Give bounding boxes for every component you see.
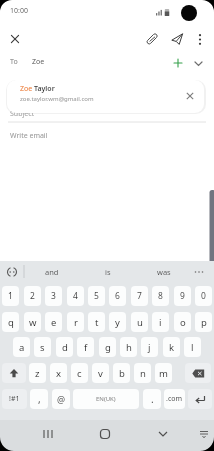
staticText: and bbox=[45, 267, 59, 277]
staticText: c bbox=[77, 367, 82, 380]
button[interactable]: .com bbox=[164, 389, 185, 409]
button[interactable]: b bbox=[113, 363, 130, 383]
button[interactable]: y bbox=[109, 312, 126, 332]
button[interactable]: 8 bbox=[152, 286, 169, 306]
staticText: .com bbox=[166, 394, 183, 404]
button[interactable]: was bbox=[140, 261, 188, 282]
staticText: p bbox=[201, 316, 207, 329]
button[interactable]: 5 bbox=[88, 286, 105, 306]
button[interactable]: 1 bbox=[2, 286, 19, 306]
button[interactable] bbox=[171, 56, 185, 70]
button[interactable]: i bbox=[152, 312, 169, 332]
staticText: zoe.taylor.wm@gmail.com bbox=[20, 95, 94, 103]
staticText: Write email bbox=[10, 131, 48, 141]
staticText: z bbox=[35, 367, 40, 380]
button[interactable]: , bbox=[30, 389, 48, 409]
button[interactable]: x bbox=[50, 363, 67, 383]
staticText: s bbox=[40, 341, 45, 354]
staticText: o bbox=[180, 316, 186, 329]
button[interactable] bbox=[4, 264, 20, 280]
staticText: EN(UK) bbox=[96, 395, 116, 403]
button[interactable]: a bbox=[13, 337, 30, 357]
button[interactable]: e bbox=[45, 312, 62, 332]
staticText: d bbox=[62, 341, 68, 354]
button[interactable]: u bbox=[131, 312, 148, 332]
staticText: 6 bbox=[115, 290, 120, 302]
button[interactable] bbox=[2, 363, 26, 383]
staticText: w bbox=[29, 316, 37, 329]
staticText: y bbox=[115, 316, 120, 329]
staticText: 2 bbox=[30, 290, 35, 302]
button[interactable]: o bbox=[174, 312, 191, 332]
button[interactable] bbox=[8, 32, 22, 46]
staticText: 10:00 bbox=[10, 6, 28, 16]
staticText: m bbox=[159, 367, 168, 380]
staticText: is bbox=[105, 267, 111, 277]
button[interactable] bbox=[183, 89, 197, 103]
button[interactable]: w bbox=[24, 312, 41, 332]
button[interactable] bbox=[194, 32, 206, 47]
button[interactable]: p bbox=[195, 312, 212, 332]
button[interactable]: 3 bbox=[45, 286, 62, 306]
button[interactable]: . bbox=[143, 389, 161, 409]
button[interactable] bbox=[185, 363, 211, 383]
staticText: h bbox=[126, 341, 132, 354]
button[interactable]: r bbox=[67, 312, 84, 332]
staticText: 4 bbox=[73, 290, 78, 302]
button[interactable]: 9 bbox=[174, 286, 191, 306]
button[interactable]: 0 bbox=[195, 286, 212, 306]
button[interactable]: s bbox=[34, 337, 51, 357]
staticText: k bbox=[169, 341, 175, 354]
button[interactable]: h bbox=[120, 337, 137, 357]
button[interactable]: q bbox=[2, 312, 19, 332]
button[interactable] bbox=[192, 57, 205, 70]
button[interactable] bbox=[98, 428, 112, 440]
staticText: t bbox=[95, 316, 99, 329]
button[interactable] bbox=[146, 33, 159, 46]
button[interactable]: n bbox=[134, 363, 151, 383]
button[interactable]: Zoe Taylor bbox=[7, 80, 204, 113]
button[interactable] bbox=[170, 32, 184, 46]
staticText: 7 bbox=[137, 290, 142, 302]
button[interactable]: EN(UK) bbox=[73, 389, 139, 409]
staticText: e bbox=[51, 316, 57, 329]
staticText: 1 bbox=[8, 290, 13, 302]
button[interactable]: 4 bbox=[67, 286, 84, 306]
staticText: . bbox=[151, 392, 154, 406]
button[interactable]: l bbox=[184, 337, 201, 357]
button[interactable] bbox=[40, 428, 56, 440]
staticText: 3 bbox=[51, 290, 56, 302]
button[interactable] bbox=[188, 389, 212, 409]
button[interactable] bbox=[190, 261, 208, 282]
button[interactable]: and bbox=[28, 261, 76, 282]
staticText: g bbox=[105, 341, 111, 354]
button[interactable]: 6 bbox=[109, 286, 126, 306]
button[interactable]: k bbox=[163, 337, 180, 357]
button[interactable] bbox=[155, 428, 171, 440]
staticText: v bbox=[98, 367, 103, 380]
staticText: j bbox=[148, 341, 151, 354]
button[interactable] bbox=[197, 428, 211, 440]
staticText: 5 bbox=[94, 290, 99, 302]
staticText: q bbox=[8, 316, 14, 329]
staticText: Subject bbox=[10, 109, 35, 119]
staticText: i bbox=[159, 316, 162, 329]
button[interactable]: f bbox=[77, 337, 94, 357]
button[interactable]: g bbox=[99, 337, 116, 357]
button[interactable]: 7 bbox=[131, 286, 148, 306]
button[interactable]: @ bbox=[52, 389, 70, 409]
button[interactable]: d bbox=[56, 337, 73, 357]
button[interactable]: !#1 bbox=[2, 389, 27, 409]
button[interactable]: t bbox=[88, 312, 105, 332]
button[interactable]: c bbox=[71, 363, 88, 383]
staticText: 9 bbox=[180, 290, 185, 302]
button[interactable]: m bbox=[155, 363, 172, 383]
staticText: 8 bbox=[158, 290, 163, 302]
button[interactable]: z bbox=[29, 363, 46, 383]
button[interactable]: j bbox=[141, 337, 158, 357]
staticText: To bbox=[10, 57, 18, 67]
button[interactable]: 2 bbox=[24, 286, 41, 306]
button[interactable]: v bbox=[92, 363, 109, 383]
staticText: b bbox=[119, 367, 125, 380]
button[interactable]: is bbox=[84, 261, 132, 282]
